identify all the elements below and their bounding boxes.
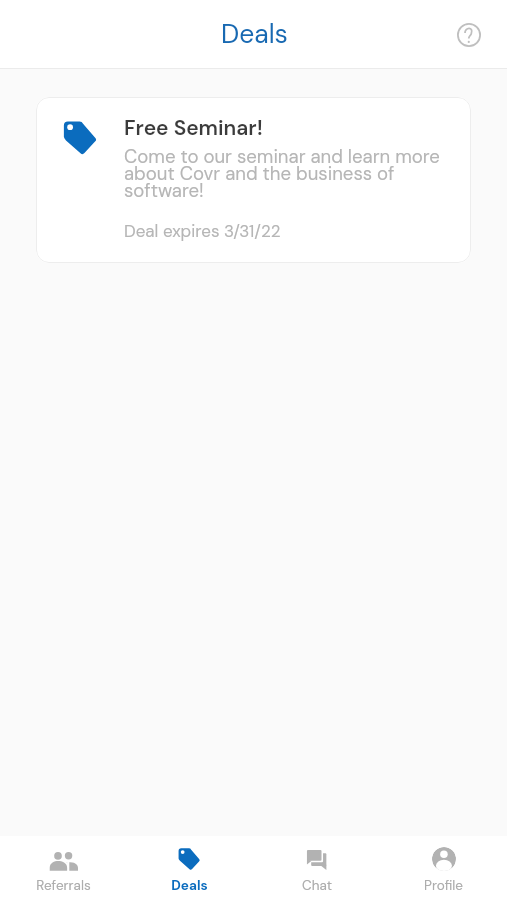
- staticText: Come to our seminar and learn more about…: [124, 145, 455, 203]
- staticText: Deal expires 3/31/22: [124, 220, 281, 242]
- staticText: Deals: [171, 877, 208, 895]
- button[interactable]: Deals: [126, 836, 253, 900]
- button[interactable]: Chat: [253, 836, 380, 900]
- staticText: Profile: [424, 877, 463, 895]
- staticText: Free Seminar!: [124, 114, 263, 141]
- button[interactable]: Referrals: [0, 836, 126, 900]
- button[interactable]: Help: [450, 15, 488, 53]
- staticText: Deals: [221, 17, 288, 52]
- button[interactable]: Profile: [380, 836, 507, 900]
- button[interactable]: Free Seminar!: [36, 97, 471, 263]
- staticText: Chat: [302, 877, 332, 895]
- staticText: Referrals: [36, 877, 91, 895]
